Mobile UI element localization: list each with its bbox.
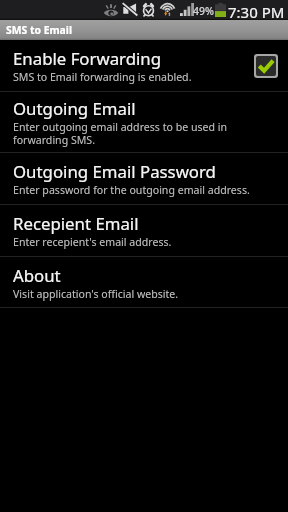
button[interactable]: About [0, 257, 288, 308]
staticText: Enter recepient's email address. [13, 235, 172, 249]
staticText: Outgoing Email Password [13, 160, 216, 183]
button[interactable]: Outgoing Email [0, 92, 288, 153]
staticText: Outgoing Email [13, 97, 136, 120]
staticText: About [13, 264, 61, 287]
staticText: SMS to Email forwarding is enabled. [13, 70, 192, 84]
staticText: 49% [193, 4, 214, 18]
staticText: Enable Forwarding [13, 47, 162, 70]
button[interactable]: Outgoing Email Password [0, 153, 288, 205]
button[interactable]: Enable Forwarding checkbox, checked [254, 54, 278, 78]
staticText: Visit application's official website. [13, 287, 179, 301]
staticText: Recepient Email [13, 212, 139, 235]
staticText: 7:30 PM [228, 2, 285, 22]
button[interactable]: Recepient Email [0, 205, 288, 257]
staticText: SMS to Email [6, 23, 73, 37]
staticText: Enter outgoing email address to be used … [13, 120, 278, 147]
button[interactable]: Enable Forwarding [0, 40, 288, 92]
staticText: Enter password for the outgoing email ad… [13, 183, 250, 197]
